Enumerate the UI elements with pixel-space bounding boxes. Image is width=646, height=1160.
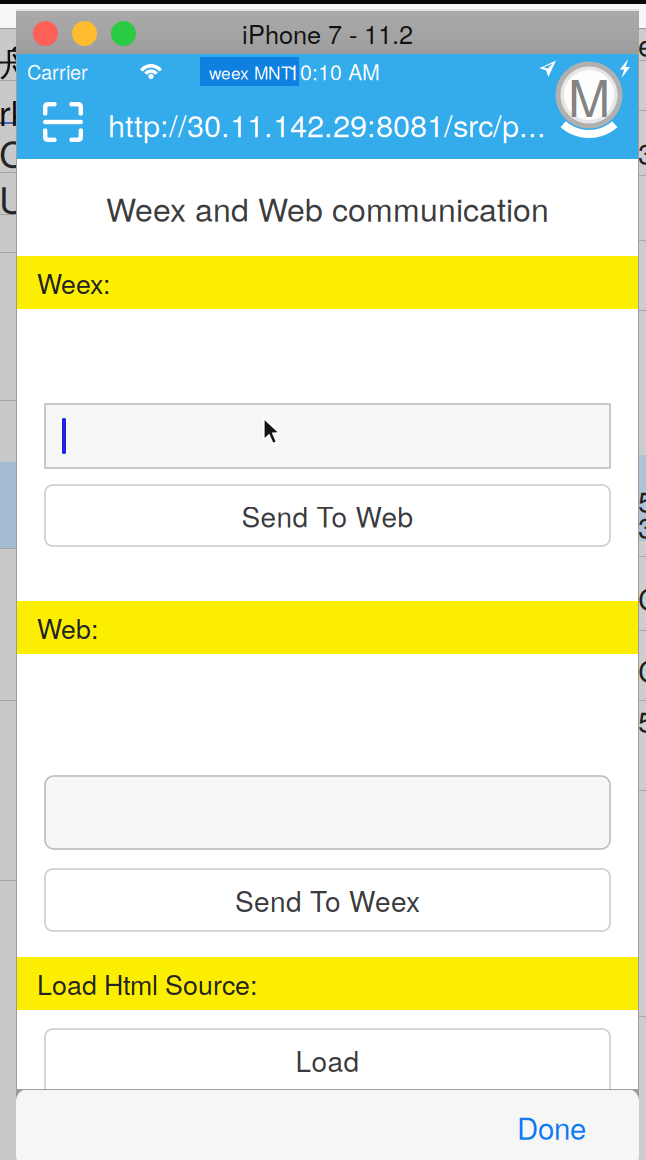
- staticText: U: [0, 171, 26, 225]
- button[interactable]: Message from web: [45, 776, 610, 849]
- staticText: C: [638, 649, 646, 691]
- staticText: 5: [638, 699, 646, 741]
- staticText: 3: [638, 505, 646, 547]
- staticText: M: [568, 59, 610, 131]
- staticText: Load: [295, 1040, 359, 1080]
- button[interactable]: Scan QR code: [43, 102, 83, 142]
- staticText: C: [638, 577, 646, 619]
- staticText: Send To Weex: [235, 880, 420, 920]
- staticText: Done: [517, 1106, 586, 1148]
- staticText: 3: [638, 131, 646, 173]
- button[interactable]: Message to send to web: [45, 404, 610, 468]
- button[interactable]: Send To Weex: [45, 869, 610, 931]
- staticText: rk: [0, 86, 28, 136]
- staticText: Send To Web: [241, 495, 413, 536]
- staticText: 舟: [0, 42, 34, 86]
- staticText: Load Html Source:: [37, 964, 257, 1003]
- staticText: Carrier: [27, 57, 88, 85]
- staticText: weex MNT: [209, 60, 292, 84]
- staticText: Weex:: [37, 263, 110, 302]
- staticText: iPhone 7 - 11.2: [242, 15, 413, 51]
- button[interactable]: Done: [468, 1104, 613, 1150]
- staticText: C: [0, 125, 26, 179]
- button[interactable]: Send To Web: [45, 485, 610, 546]
- staticText: http://30.11.142.29:8081/src/p...: [108, 102, 546, 146]
- staticText: e: [638, 23, 646, 65]
- staticText: Weex and Web communication: [106, 185, 549, 231]
- staticText: 5: [638, 479, 646, 521]
- staticText: 10:10 AM: [288, 56, 380, 86]
- staticText: Web:: [37, 608, 98, 647]
- button[interactable]: Load: [45, 1029, 610, 1109]
